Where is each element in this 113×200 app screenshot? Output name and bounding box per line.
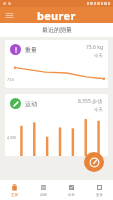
staticText: 目标 (68, 193, 75, 197)
staticText: 最近的测量 (42, 26, 72, 34)
staticText: beurer (37, 8, 76, 23)
staticText: 运动 (25, 100, 37, 108)
staticText: 重量 (25, 46, 37, 54)
staticText: 趋势 (40, 193, 47, 197)
button[interactable]: 趋势 (29, 180, 57, 200)
staticText: 今天 (94, 107, 103, 113)
button[interactable]: 主页 (0, 180, 29, 200)
staticText: 8,555 步伐 (78, 98, 103, 105)
staticText: 主页 (11, 193, 18, 197)
button[interactable]: 目标 (57, 180, 85, 200)
staticText: 更多 (96, 193, 103, 197)
staticText: 今天 (94, 53, 103, 59)
staticText: 73.6 kg (86, 44, 103, 51)
staticText: 73.6 (7, 77, 14, 82)
button[interactable]: 运动 (5, 94, 108, 156)
button[interactable]: 更多 (85, 180, 113, 200)
button[interactable]: Add measurement (84, 152, 104, 172)
button[interactable]: 重量 (5, 40, 108, 88)
staticText: 4,000 (7, 135, 16, 140)
button[interactable]: Menu (4, 10, 14, 20)
